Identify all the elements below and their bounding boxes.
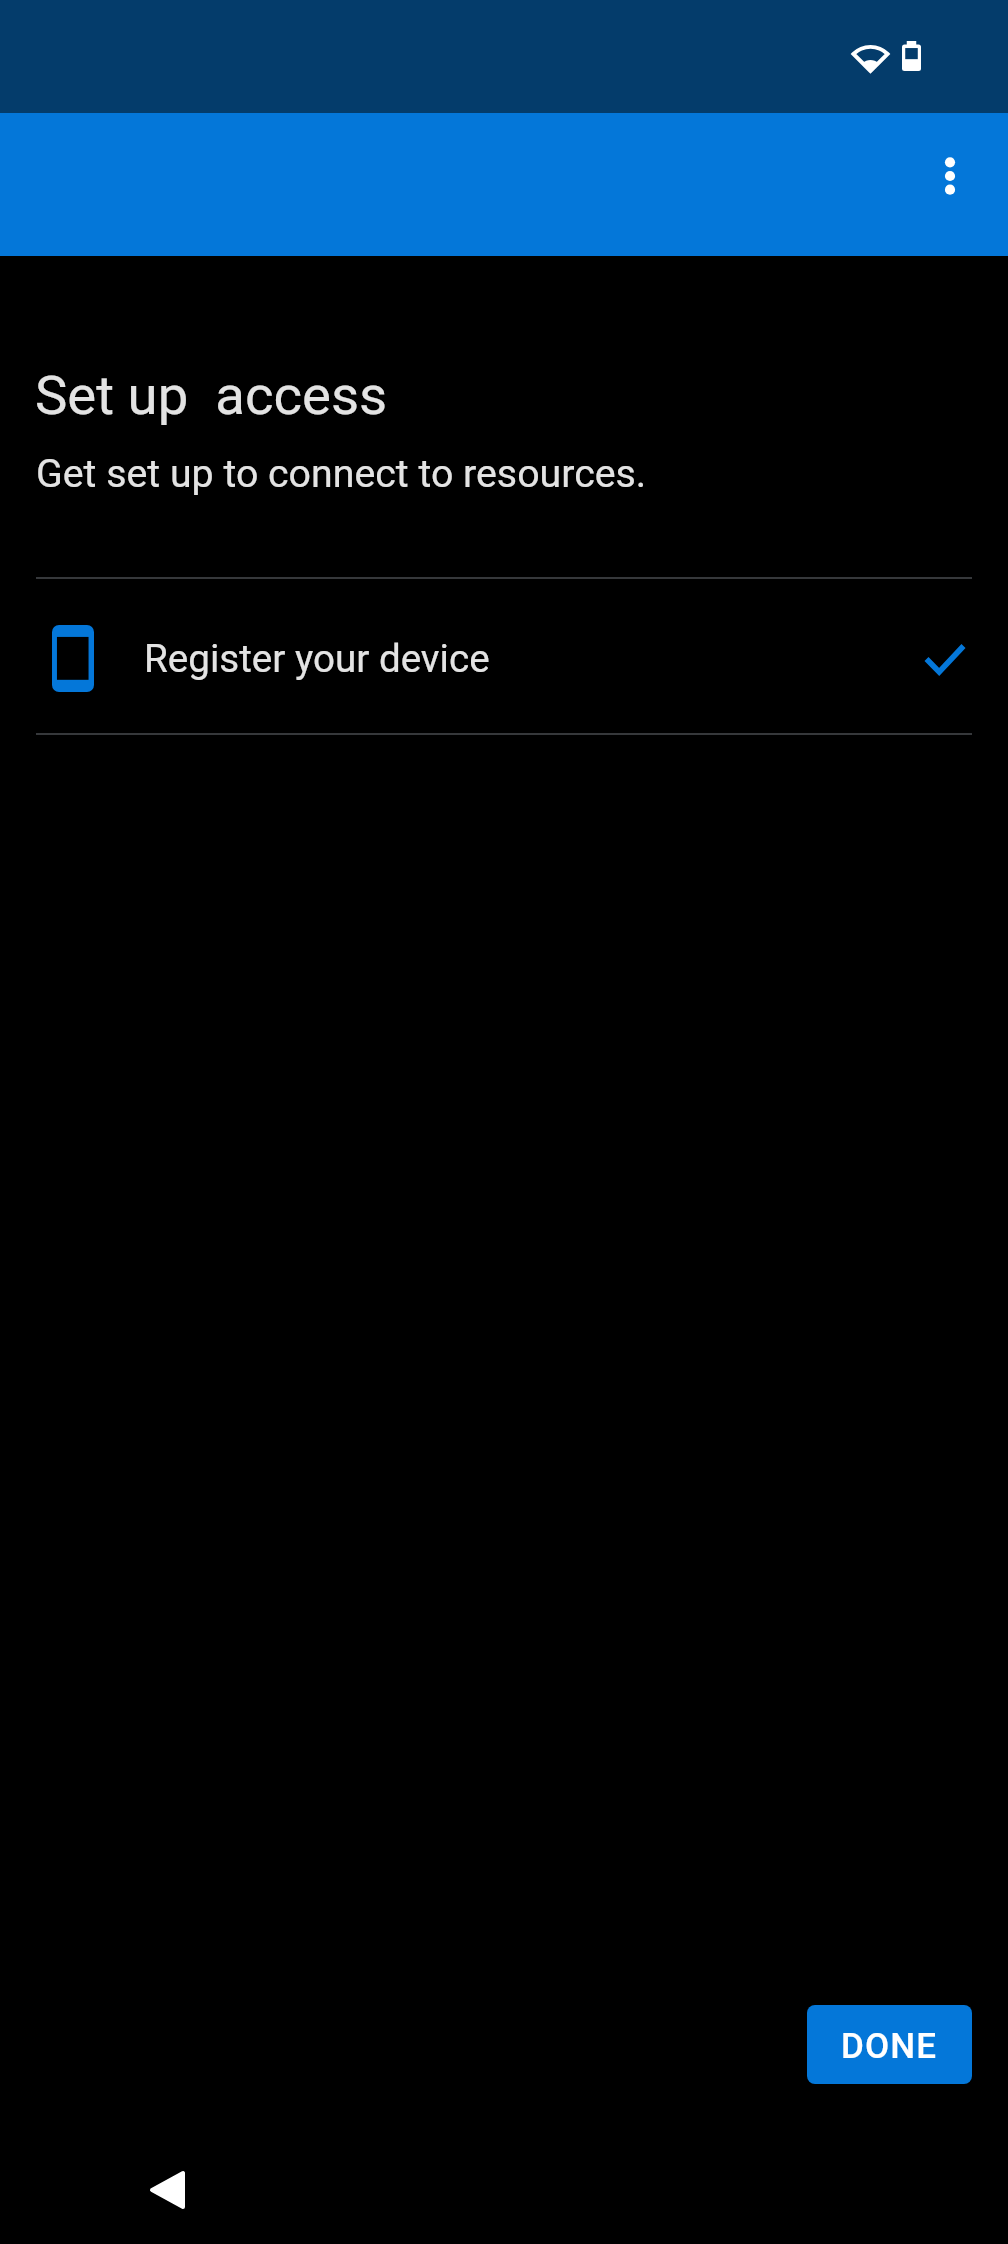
- button[interactable]: Register your device: [0, 581, 1008, 736]
- staticText: Get set up to connect to resources.: [36, 452, 647, 496]
- staticText: Set up access: [35, 363, 388, 427]
- staticText: Register your device: [144, 637, 490, 681]
- button[interactable]: More options: [902, 128, 998, 224]
- button[interactable]: Back: [119, 2142, 215, 2238]
- staticText: DONE: [841, 2026, 938, 2067]
- button[interactable]: DONE: [807, 2005, 972, 2084]
